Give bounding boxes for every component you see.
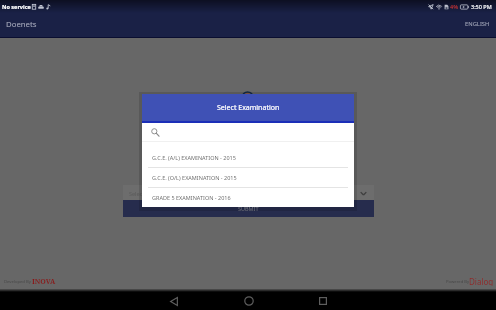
button[interactable]: G.C.E. (O/L) EXAMINATION - 2015 — [142, 168, 354, 187]
staticText: Powered By — [446, 279, 470, 285]
staticText: Select... — [129, 190, 149, 197]
button[interactable]: Back — [161, 292, 187, 310]
button[interactable]: Recent apps — [310, 292, 336, 310]
staticText: INOVA — [32, 277, 56, 286]
staticText: ENGLISH — [465, 20, 490, 28]
staticText: Doenets — [6, 19, 37, 30]
staticText: GRADE 5 EXAMINATION - 2016 — [152, 194, 231, 201]
button[interactable]: G.C.E. (A/L) EXAMINATION - 2015 — [142, 142, 354, 173]
button[interactable]: GRADE 5 EXAMINATION - 2016 — [142, 188, 354, 207]
staticText: Select Examination — [217, 103, 280, 113]
staticText: Developed By — [4, 279, 31, 285]
staticText: SUBMIT — [238, 205, 259, 212]
button[interactable]: Search — [151, 128, 160, 137]
other: Expand — [360, 190, 367, 197]
staticText: G.C.E. (A/L) EXAMINATION - 2015 — [152, 154, 236, 161]
staticText: No service — [2, 3, 31, 10]
button[interactable]: Home — [236, 292, 262, 310]
staticText: G.C.E. (O/L) EXAMINATION - 2015 — [152, 174, 237, 181]
staticText: 3:50 PM — [471, 3, 492, 10]
button[interactable]: ENGLISH — [455, 16, 496, 34]
button[interactable]: Select... — [123, 185, 374, 201]
button[interactable]: SUBMIT — [123, 200, 374, 217]
staticText: Dialog — [469, 276, 494, 286]
staticText: 4% — [450, 3, 459, 10]
